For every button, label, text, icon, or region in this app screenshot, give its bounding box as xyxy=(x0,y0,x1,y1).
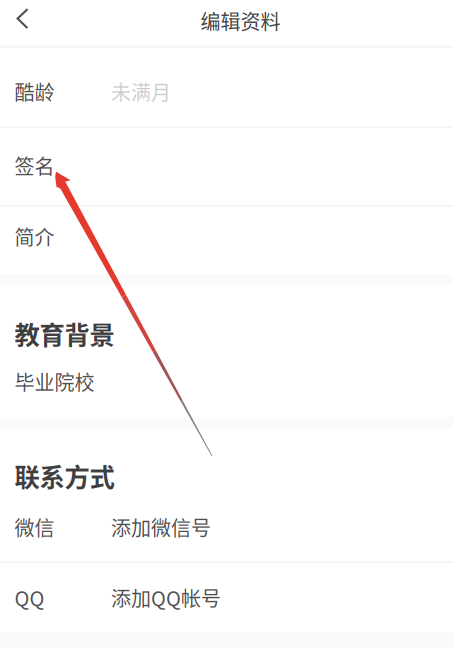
staticText: 教育背景 xyxy=(14,315,114,352)
staticText: 毕业院校 xyxy=(14,367,94,396)
staticText: 添加微信号 xyxy=(111,512,211,541)
staticText: 简介 xyxy=(14,222,54,251)
button[interactable]: QQ xyxy=(0,563,453,632)
staticText: QQ xyxy=(14,583,44,612)
staticText: 酷龄 xyxy=(14,77,54,106)
staticText: 微信 xyxy=(14,512,54,541)
button[interactable]: 简介 xyxy=(0,207,453,274)
staticText: 签名 xyxy=(14,151,54,180)
staticText: 编辑资料 xyxy=(200,6,280,35)
staticText: 联系方式 xyxy=(14,457,114,494)
button[interactable]: Back xyxy=(0,0,45,44)
button[interactable]: 酷龄 xyxy=(0,47,453,126)
button[interactable]: 微信 xyxy=(0,498,453,561)
staticText: 未满月 xyxy=(111,77,171,106)
staticText: 添加QQ帐号 xyxy=(111,583,221,612)
button[interactable]: 签名 xyxy=(0,128,453,205)
button[interactable]: 毕业院校 xyxy=(0,356,453,417)
